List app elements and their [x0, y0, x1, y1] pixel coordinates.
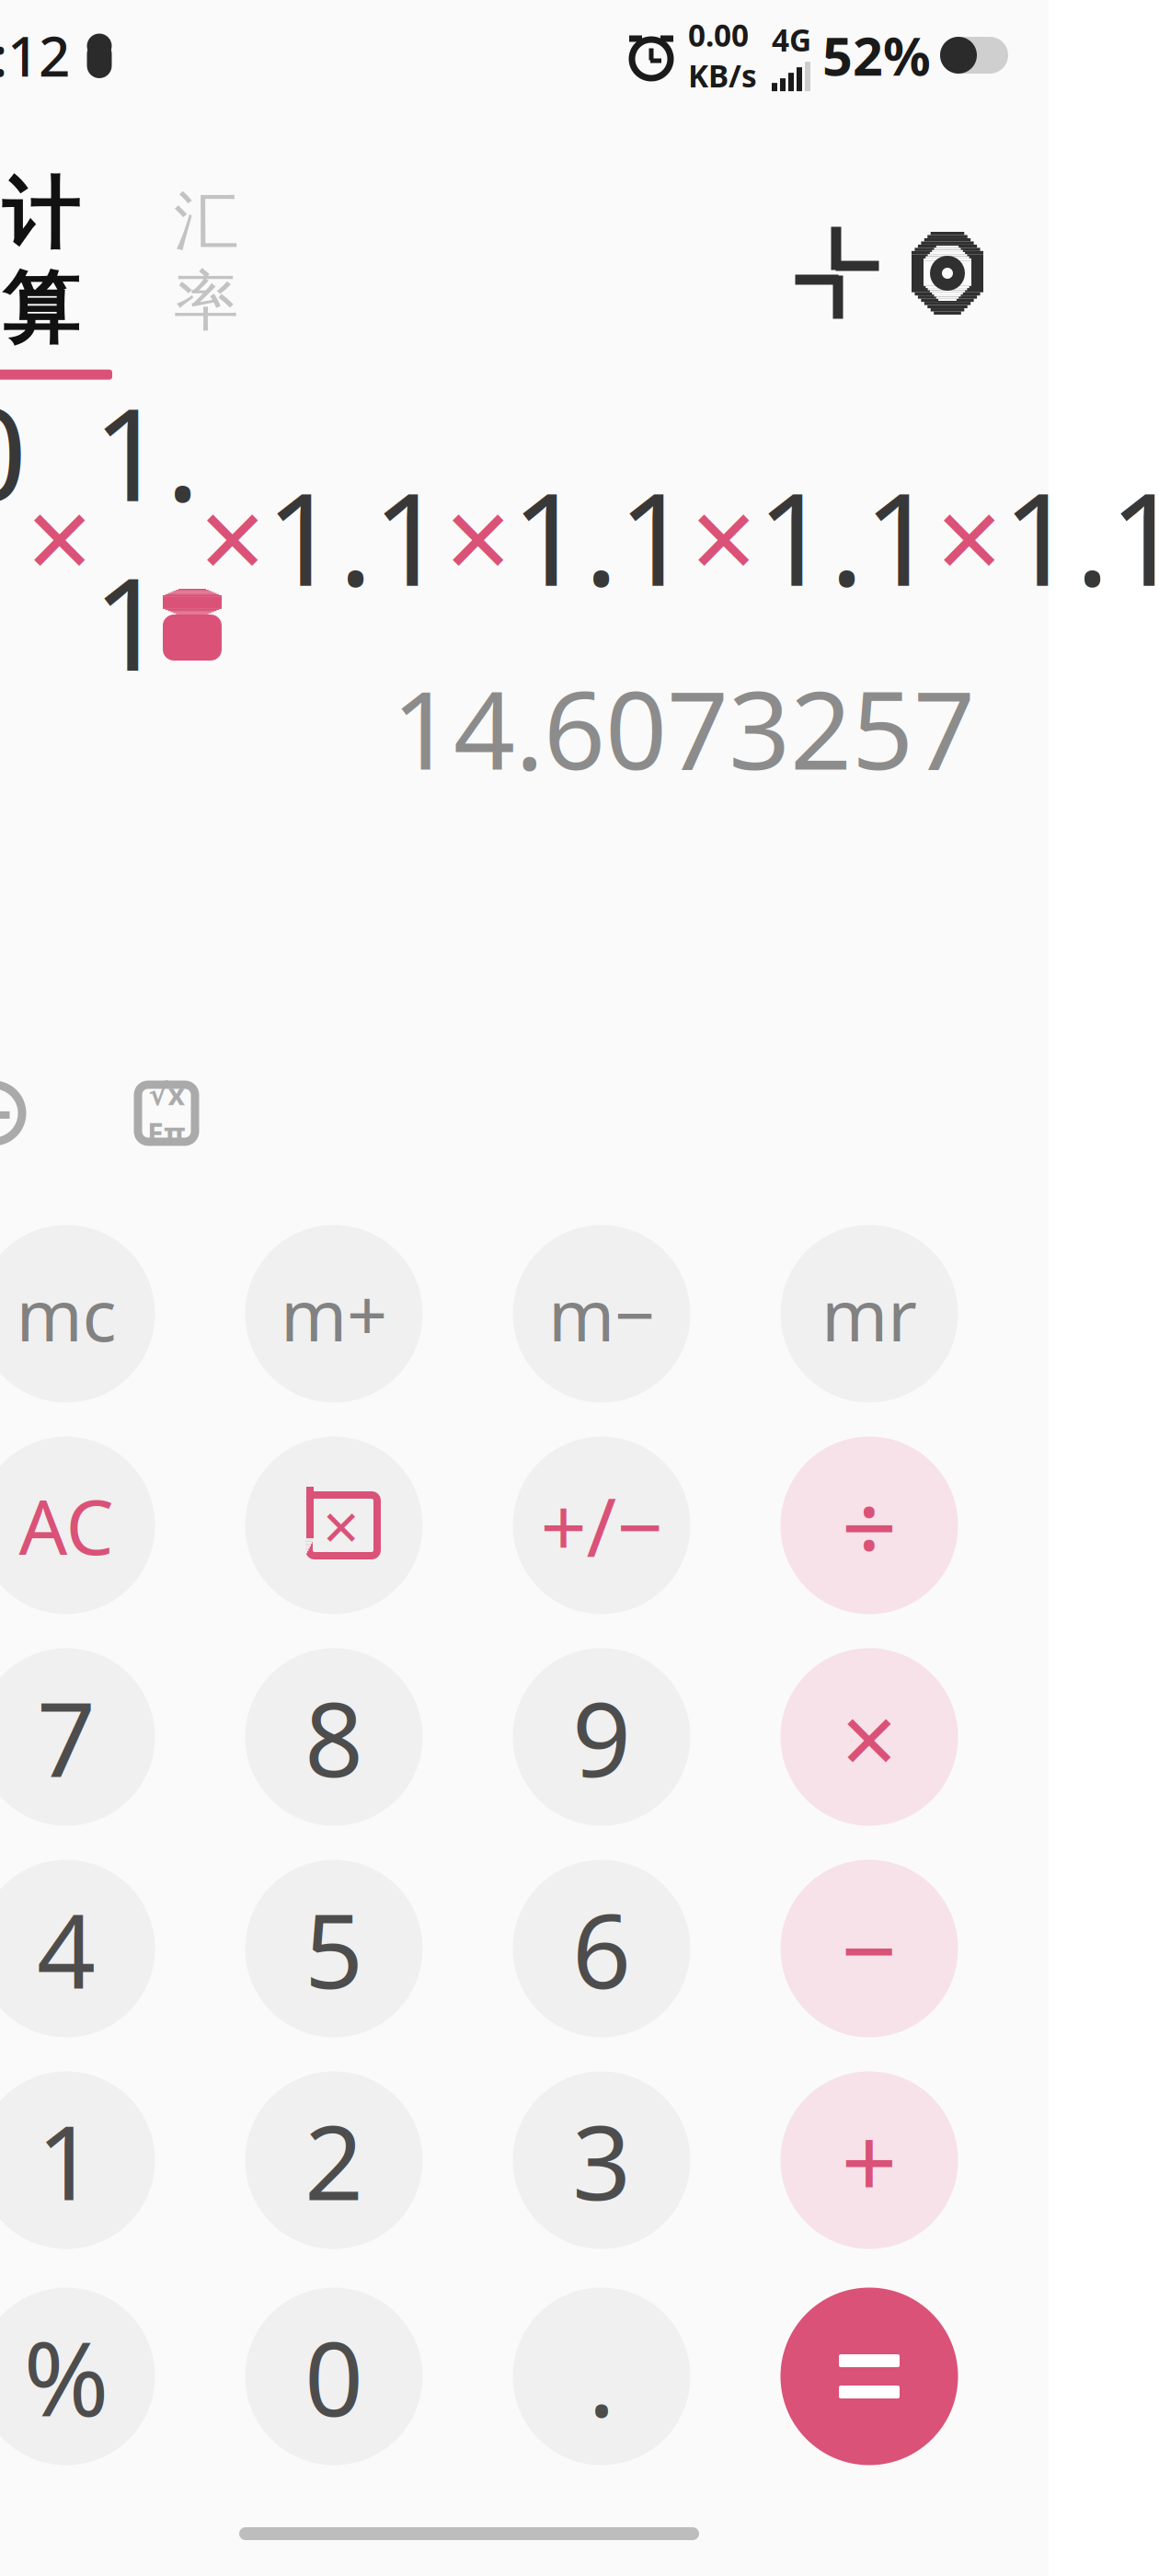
- staticText: ×: [323, 1483, 360, 1568]
- button[interactable]: 7: [0, 1648, 155, 1826]
- staticText: 4: [37, 1880, 96, 2017]
- staticText: 7: [37, 1669, 96, 1805]
- staticText: 14.6073257: [392, 656, 975, 799]
- button[interactable]: +: [780, 2071, 958, 2249]
- button[interactable]: 5: [245, 1860, 423, 2037]
- staticText: 0.00: [688, 14, 749, 55]
- staticText: ×: [841, 1672, 897, 1802]
- button[interactable]: 9: [513, 1648, 690, 1826]
- button[interactable]: m−: [513, 1225, 690, 1403]
- staticText: +/−: [540, 1472, 663, 1579]
- button[interactable]: 0: [245, 2288, 423, 2465]
- staticText: +: [841, 2095, 897, 2225]
- staticText: 1.1: [757, 452, 936, 621]
- staticText: AC: [19, 1475, 114, 1576]
- button[interactable]: mr: [780, 1225, 958, 1403]
- button[interactable]: 1: [0, 2071, 155, 2249]
- staticText: Eπ: [147, 1113, 186, 1152]
- button[interactable]: 2: [245, 2071, 423, 2249]
- button[interactable]: ×: [780, 1648, 958, 1826]
- button[interactable]: 8: [245, 1648, 423, 1826]
- staticText: %: [23, 2308, 109, 2445]
- staticText: ×: [27, 460, 93, 613]
- button[interactable]: %: [0, 2288, 155, 2465]
- button[interactable]: Scientific functions: [118, 1064, 215, 1162]
- staticText: 9.07: [0, 367, 27, 706]
- button[interactable]: Backspace: [245, 1437, 423, 1614]
- button[interactable]: 3: [513, 2071, 690, 2249]
- button[interactable]: ÷: [780, 1437, 958, 1614]
- staticText: 52%: [822, 20, 931, 90]
- button[interactable]: .: [513, 2288, 690, 2465]
- staticText: .: [588, 2308, 615, 2445]
- staticText: m+: [281, 1267, 387, 1361]
- staticText: m−: [548, 1267, 655, 1361]
- staticText: 汇率: [174, 181, 239, 341]
- staticText: 8: [304, 1669, 363, 1805]
- button[interactable]: AC: [0, 1437, 155, 1614]
- button[interactable]: History: [0, 1064, 42, 1162]
- staticText: 计算: [2, 167, 79, 357]
- staticText: 6: [572, 1880, 631, 2017]
- button[interactable]: 汇率: [129, 227, 284, 319]
- button[interactable]: 4: [0, 1860, 155, 2037]
- staticText: √x: [149, 1074, 184, 1113]
- button[interactable]: Settings: [892, 218, 1003, 328]
- staticText: 1: [37, 2092, 96, 2229]
- staticText: 15:12: [0, 19, 70, 92]
- staticText: ×: [691, 460, 757, 613]
- button[interactable]: +/−: [513, 1437, 690, 1614]
- button[interactable]: m+: [245, 1225, 423, 1403]
- staticText: −: [841, 1883, 897, 2014]
- staticText: 1.1: [511, 452, 691, 621]
- button[interactable]: 6: [513, 1860, 690, 2037]
- staticText: 1.1: [266, 452, 445, 621]
- staticText: 9: [572, 1669, 631, 1805]
- staticText: ×: [936, 460, 1003, 613]
- staticText: 5: [304, 1880, 363, 2017]
- button[interactable]: −: [780, 1860, 958, 2037]
- staticText: mr: [821, 1267, 917, 1361]
- staticText: mc: [16, 1267, 116, 1361]
- staticText: KB/s: [688, 55, 757, 96]
- staticText: 2: [304, 2092, 363, 2229]
- staticText: ÷: [841, 1460, 897, 1590]
- staticText: 1.1: [93, 367, 200, 706]
- staticText: 1.1: [1003, 452, 1159, 621]
- button[interactable]: mc: [0, 1225, 155, 1403]
- staticText: ×: [445, 460, 511, 613]
- staticText: 3: [572, 2092, 631, 2229]
- staticText: 4G: [772, 19, 811, 60]
- button[interactable]: 计算: [0, 167, 129, 380]
- button[interactable]: Equals: [780, 2288, 958, 2465]
- staticText: ×: [200, 460, 266, 613]
- button[interactable]: Collapse: [782, 218, 892, 328]
- staticText: 0: [304, 2308, 363, 2445]
